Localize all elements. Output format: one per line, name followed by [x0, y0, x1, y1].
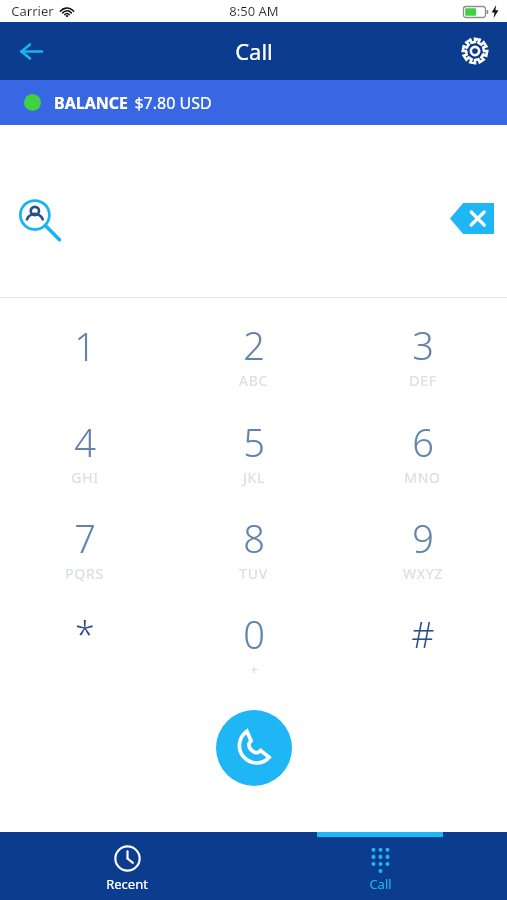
staticText: JKL [243, 468, 265, 487]
staticText: 9 [412, 512, 434, 564]
staticText: 8:50 AM [229, 2, 279, 20]
button[interactable]: 4 [0, 407, 169, 503]
staticText: GHI [71, 468, 99, 487]
button[interactable]: 0 [169, 599, 338, 695]
staticText: 3 [412, 319, 434, 371]
staticText: 7 [74, 512, 96, 564]
staticText: 2 [243, 319, 265, 371]
staticText: DEF [409, 371, 437, 390]
staticText: 8 [243, 512, 265, 564]
staticText: * [75, 610, 95, 659]
button[interactable]: # [338, 599, 507, 695]
button[interactable]: Call [253, 832, 507, 900]
staticText: Call [369, 875, 392, 893]
staticText: PQRS [65, 564, 104, 583]
button[interactable]: 1 [0, 310, 169, 407]
staticText: Call [235, 36, 273, 66]
staticText: # [411, 610, 435, 659]
button[interactable]: 9 [338, 503, 507, 599]
button[interactable]: Recent [0, 832, 253, 900]
staticText: ABC [239, 371, 268, 390]
button[interactable]: 8 [169, 503, 338, 599]
staticText: TUV [239, 564, 268, 583]
button[interactable]: Settings [451, 27, 499, 75]
button[interactable]: Back [7, 27, 55, 75]
staticText: 5 [243, 416, 265, 468]
staticText: Recent [106, 875, 148, 893]
button[interactable]: * [0, 599, 169, 695]
staticText: 6 [412, 416, 434, 468]
button[interactable]: Search contacts [8, 190, 70, 252]
button[interactable]: 5 [169, 407, 338, 503]
button[interactable]: 6 [338, 407, 507, 503]
staticText: 1 [74, 320, 96, 372]
button[interactable]: 3 [338, 310, 507, 407]
staticText: 0 [243, 608, 265, 660]
staticText: Carrier [11, 2, 54, 20]
button[interactable]: BALANCE [0, 80, 507, 125]
staticText: BALANCE [54, 92, 128, 114]
staticText: WXYZ [403, 564, 443, 583]
button[interactable]: Backspace [441, 189, 503, 247]
staticText: MNO [404, 468, 441, 487]
button[interactable]: 7 [0, 503, 169, 599]
staticText: + [250, 660, 259, 678]
staticText: 4 [74, 416, 96, 468]
button[interactable]: Call [216, 710, 292, 786]
staticText: $7.80 USD [134, 92, 212, 114]
button[interactable]: 2 [169, 310, 338, 407]
